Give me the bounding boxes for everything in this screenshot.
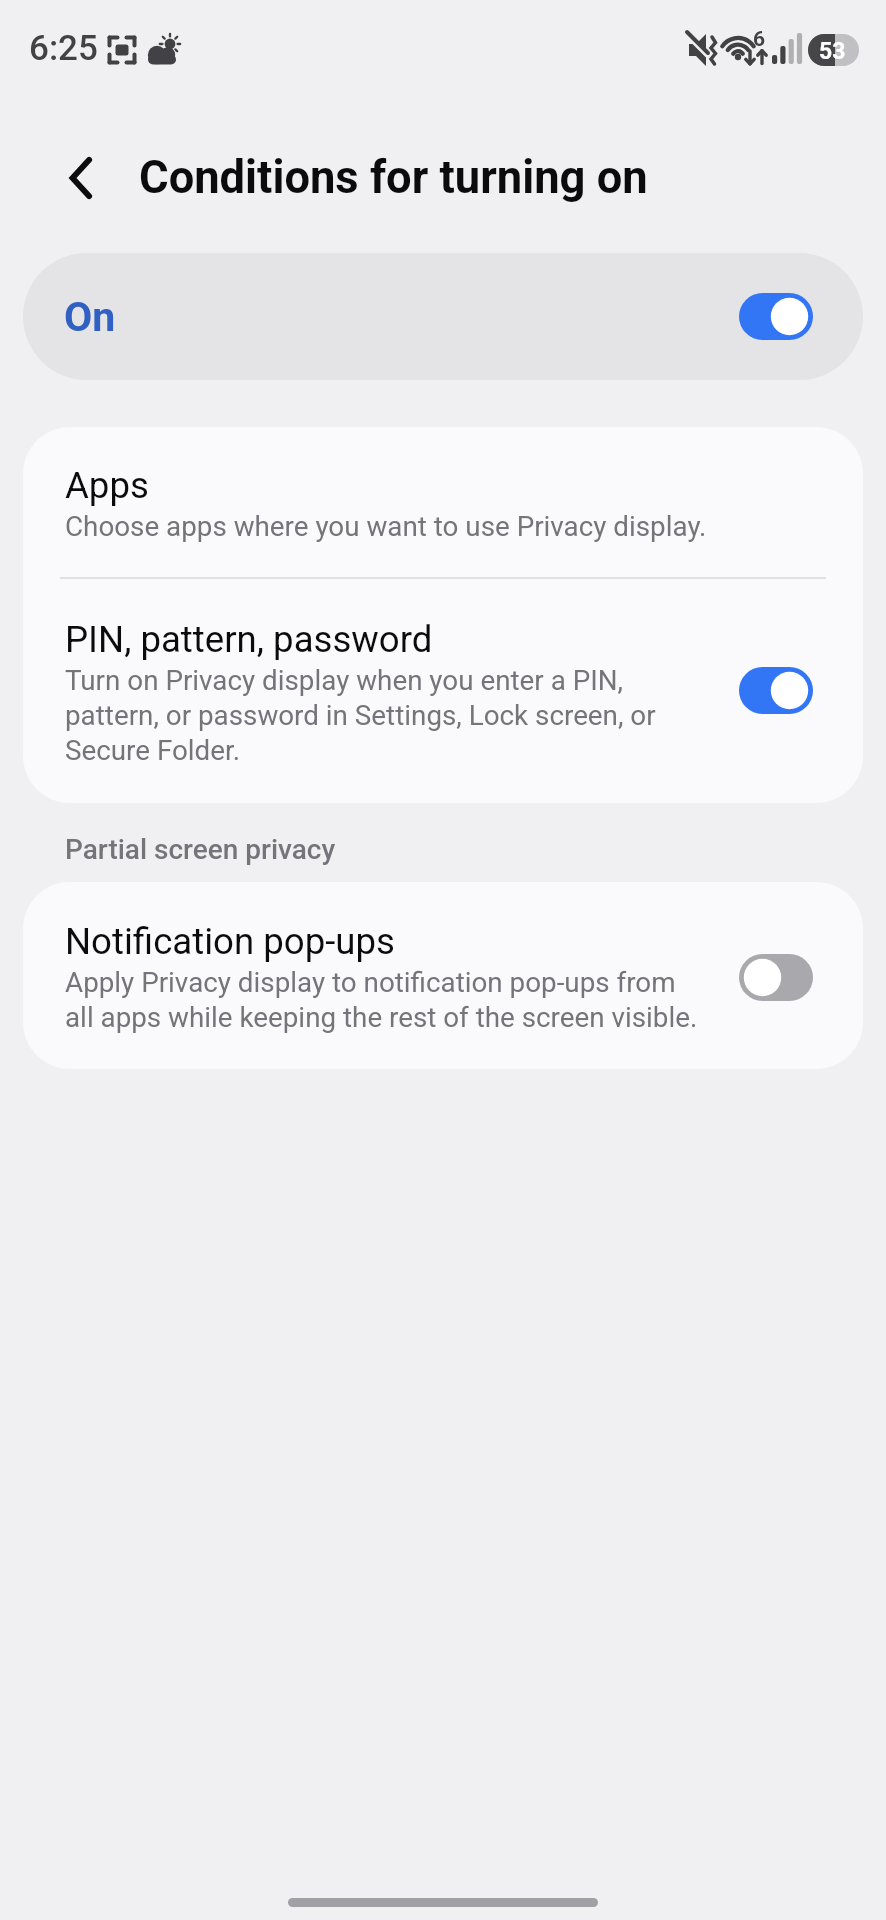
- staticText: Conditions for turning on: [139, 151, 648, 204]
- staticText: On: [64, 293, 116, 341]
- button[interactable]: Turn off: [739, 667, 813, 714]
- staticText: Apps: [65, 464, 149, 507]
- staticText: 53: [819, 38, 846, 65]
- staticText: 6:25: [29, 28, 98, 69]
- staticText: Notification pop-ups: [65, 920, 395, 963]
- button[interactable]: Apps: [23, 427, 863, 577]
- button[interactable]: On: [23, 253, 863, 380]
- staticText: Partial screen privacy: [65, 833, 336, 866]
- button[interactable]: PIN, pattern, password: [23, 579, 863, 803]
- button[interactable]: Turn on: [739, 954, 813, 1001]
- staticText: Turn on Privacy display when you enter a…: [65, 662, 656, 767]
- staticText: 6: [753, 27, 766, 52]
- button[interactable]: Turn off: [739, 293, 813, 340]
- button[interactable]: Navigate up: [44, 140, 118, 214]
- staticText: Choose apps where you want to use Privac…: [65, 508, 707, 543]
- staticText: Apply Privacy display to notification po…: [65, 964, 698, 1034]
- staticText: PIN, pattern, password: [65, 618, 433, 661]
- button[interactable]: Notification pop-ups: [23, 882, 863, 1069]
